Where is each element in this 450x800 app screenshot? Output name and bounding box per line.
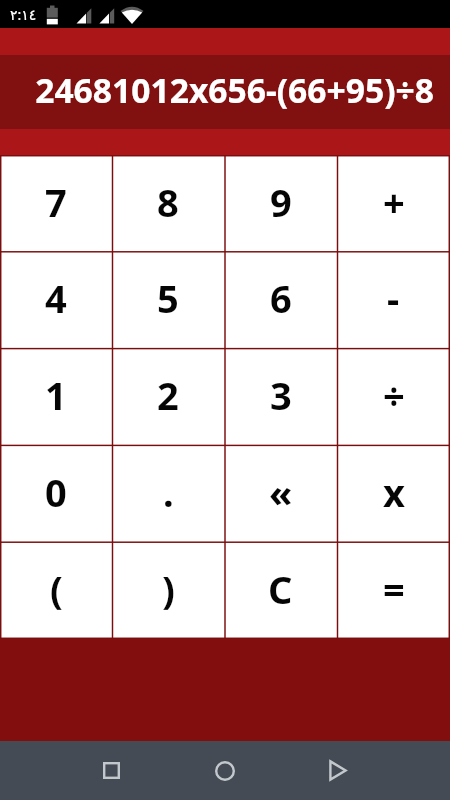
staticText: 24681012x656-(66+95)÷8	[16, 67, 434, 113]
button[interactable]: 4	[0, 251, 112, 348]
staticText: 5	[157, 272, 179, 324]
button[interactable]: Recent apps	[55, 741, 168, 800]
button[interactable]: x	[337, 445, 450, 542]
button[interactable]: (	[0, 542, 112, 639]
staticText: ÷	[383, 369, 405, 421]
staticText: C	[268, 563, 293, 615]
staticText: -	[387, 272, 400, 324]
staticText: «	[269, 466, 293, 518]
staticText: ٢:١٤	[10, 5, 37, 24]
staticText: 6	[270, 272, 292, 324]
button[interactable]: 0	[0, 445, 112, 542]
button[interactable]: 3	[224, 348, 337, 445]
staticText: x	[383, 466, 405, 518]
staticText: 3	[270, 369, 292, 421]
button[interactable]: C	[224, 542, 337, 639]
button[interactable]: 2	[112, 348, 224, 445]
staticText: 1	[45, 369, 67, 421]
staticText: )	[162, 563, 175, 615]
staticText: .	[163, 466, 174, 518]
button[interactable]: )	[112, 542, 224, 639]
button[interactable]: «	[224, 445, 337, 542]
staticText: 4	[45, 272, 67, 324]
staticText: +	[383, 176, 405, 228]
button[interactable]: 6	[224, 251, 337, 348]
staticText: 2	[157, 369, 179, 421]
button[interactable]: ÷	[337, 348, 450, 445]
button[interactable]: =	[337, 542, 450, 639]
staticText: =	[383, 563, 405, 615]
staticText: 7	[45, 176, 67, 228]
staticText: (	[50, 563, 63, 615]
staticText: 8	[157, 176, 179, 228]
button[interactable]: +	[337, 155, 450, 251]
button[interactable]: 5	[112, 251, 224, 348]
staticText: 0	[45, 466, 67, 518]
button[interactable]: 7	[0, 155, 112, 251]
button[interactable]: .	[112, 445, 224, 542]
staticText: 9	[270, 176, 292, 228]
button[interactable]: Home	[168, 741, 281, 800]
button[interactable]: 8	[112, 155, 224, 251]
button[interactable]: Back	[281, 741, 394, 800]
button[interactable]: 9	[224, 155, 337, 251]
button[interactable]: -	[337, 251, 450, 348]
button[interactable]: 1	[0, 348, 112, 445]
